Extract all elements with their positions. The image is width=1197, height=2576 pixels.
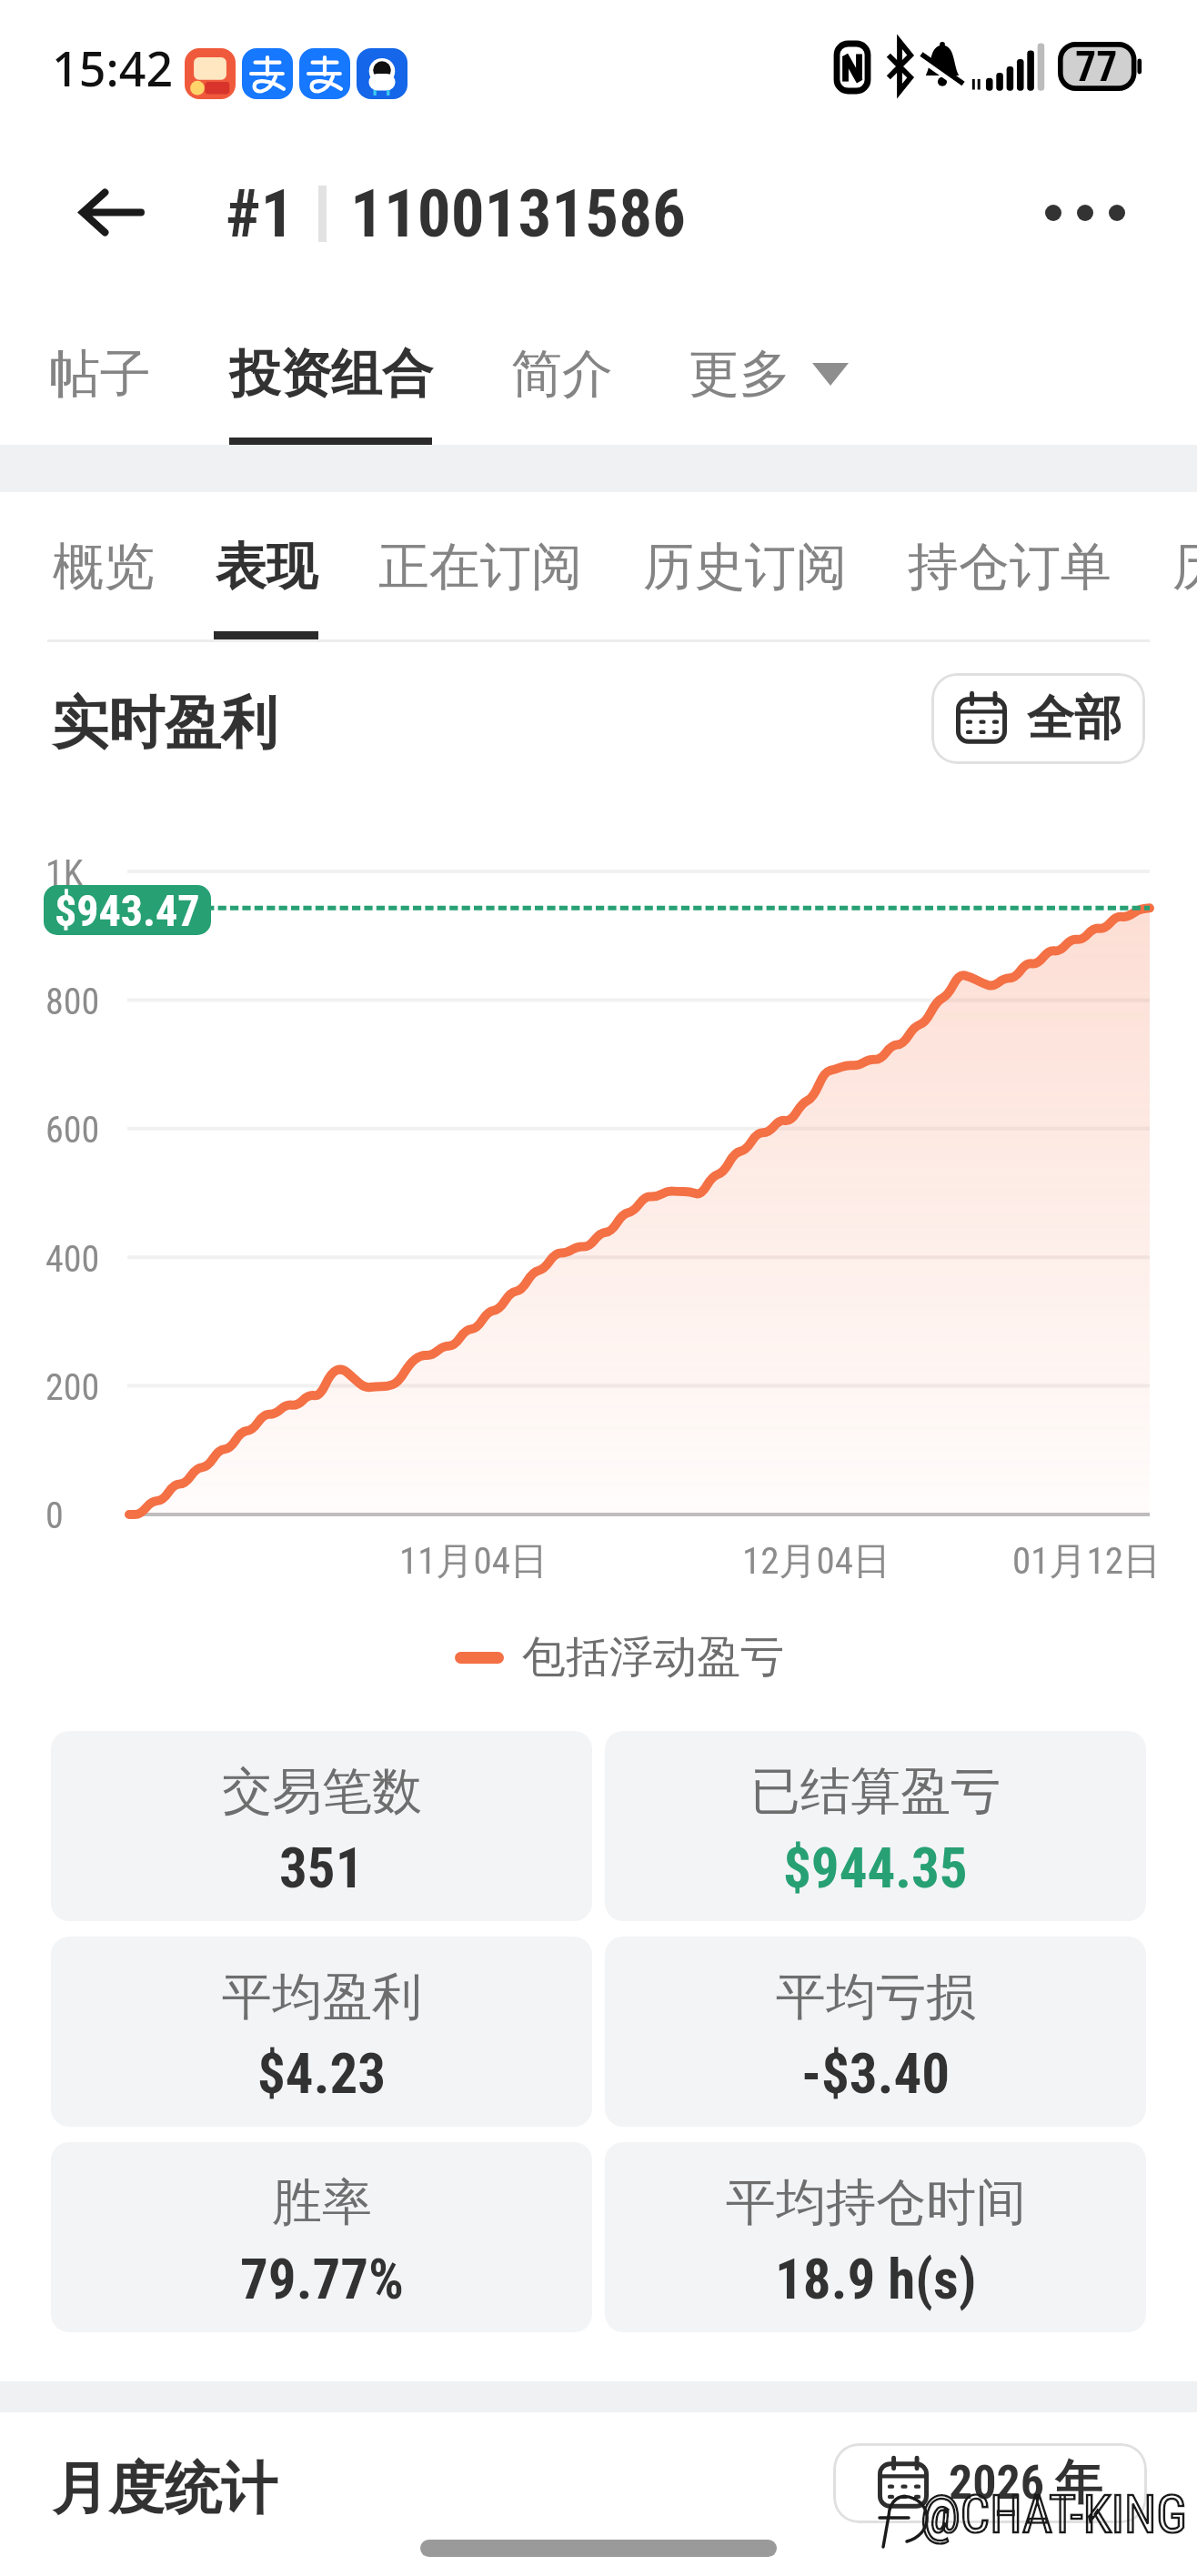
button[interactable]: 已结算盈亏 xyxy=(605,1731,1146,1921)
staticText: $4.23 xyxy=(257,2041,387,2106)
staticText: 1100131586 xyxy=(350,175,686,253)
button[interactable]: 正在订阅 xyxy=(378,535,582,599)
staticText: 600 xyxy=(45,1109,100,1149)
button[interactable]: 表现 xyxy=(216,535,317,599)
button[interactable]: 概览 xyxy=(53,535,155,599)
button[interactable]: 历 xyxy=(1172,535,1197,599)
staticText: -$3.40 xyxy=(801,2041,951,2106)
staticText: 投资组合 xyxy=(229,342,433,407)
staticText: 正在订阅 xyxy=(378,535,582,599)
staticText: 历 xyxy=(1172,535,1197,599)
button[interactable]: 胜率 xyxy=(51,2142,592,2332)
staticText: 包括浮动盈亏 xyxy=(522,1630,784,1685)
button[interactable]: Back xyxy=(67,168,155,256)
staticText: 79.77% xyxy=(240,2247,404,2311)
button[interactable]: 持仓订单 xyxy=(908,535,1111,599)
staticText: 平均盈利 xyxy=(222,1966,422,2028)
staticText: 平均亏损 xyxy=(776,1966,976,2028)
staticText: 15:42 xyxy=(52,35,174,100)
staticText: 77 xyxy=(1075,42,1118,91)
staticText: 交易笔数 xyxy=(222,1760,422,1823)
staticText: 实时盈利 xyxy=(52,688,277,759)
staticText: 18.9 h(s) xyxy=(775,2247,977,2311)
staticText: 更多 xyxy=(689,342,790,407)
staticText: 帖子 xyxy=(49,342,151,407)
staticText: 800 xyxy=(45,981,100,1021)
staticText: #1 xyxy=(226,175,295,253)
button[interactable]: 投资组合 xyxy=(229,342,433,407)
staticText: 月度统计 xyxy=(52,2453,277,2524)
staticText: $943.47 xyxy=(55,885,200,935)
button[interactable]: 帖子 xyxy=(49,342,151,407)
staticText: 胜率 xyxy=(272,2171,372,2234)
staticText: 平均持仓时间 xyxy=(726,2171,1026,2234)
staticText: 持仓订单 xyxy=(908,535,1111,599)
staticText: 0 xyxy=(45,1494,64,1535)
staticText: 200 xyxy=(45,1366,100,1406)
button[interactable]: 平均盈利 xyxy=(51,1937,592,2127)
button[interactable]: 更多 xyxy=(689,342,849,407)
staticText: $944.35 xyxy=(783,1836,968,1900)
button[interactable]: 全部 xyxy=(931,673,1145,764)
button[interactable]: 平均持仓时间 xyxy=(605,2142,1146,2332)
staticText: 2026 年 xyxy=(949,2453,1103,2513)
staticText: 简介 xyxy=(511,342,613,407)
staticText: 1K xyxy=(45,852,84,892)
button[interactable]: More options xyxy=(1040,167,1131,258)
button[interactable]: 简介 xyxy=(511,342,613,407)
staticText: 351 xyxy=(279,1836,364,1900)
staticText: 已结算盈亏 xyxy=(750,1760,1001,1823)
staticText: 全部 xyxy=(1027,689,1122,749)
staticText: 表现 xyxy=(216,535,317,599)
button[interactable]: 历史订阅 xyxy=(643,535,847,599)
staticText: 01月12日 xyxy=(1012,1538,1161,1585)
button[interactable]: 平均亏损 xyxy=(605,1937,1146,2127)
staticText: 400 xyxy=(45,1238,100,1278)
button[interactable]: 2026 年 xyxy=(833,2443,1147,2523)
staticText: 历史订阅 xyxy=(643,535,847,599)
staticText: 11月04日 xyxy=(399,1538,548,1585)
staticText: 12月04日 xyxy=(742,1538,890,1585)
staticText: 概览 xyxy=(53,535,155,599)
button[interactable]: 交易笔数 xyxy=(51,1731,592,1921)
